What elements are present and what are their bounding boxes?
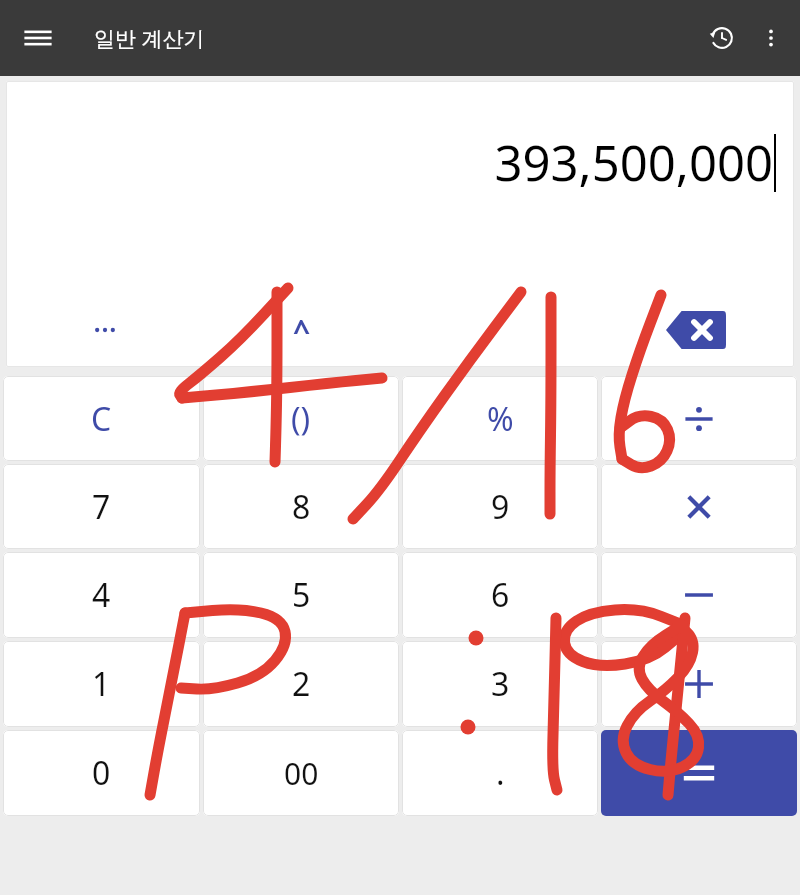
button[interactable]: Divide (601, 376, 797, 461)
staticText: 00 (284, 753, 319, 794)
staticText: ^ (293, 310, 311, 351)
staticText: 393,500,000 (494, 129, 773, 196)
button[interactable]: Minus (601, 552, 797, 638)
staticText: 5 (292, 573, 311, 617)
button[interactable]: 2 (203, 641, 399, 727)
button[interactable]: Backspace (597, 293, 794, 367)
staticText: 2 (292, 662, 311, 706)
button[interactable]: Equals (601, 730, 797, 816)
button[interactable]: 5 (203, 552, 399, 638)
staticText: 0 (92, 751, 111, 795)
button[interactable]: 1 (3, 641, 200, 727)
button[interactable]: History (696, 12, 748, 64)
button[interactable]: 3 (402, 641, 598, 727)
staticText: . (496, 751, 505, 795)
button[interactable]: More functions (6, 293, 203, 367)
button[interactable]: 6 (402, 552, 598, 638)
staticText: 3 (491, 662, 510, 706)
staticText: 6 (491, 573, 510, 617)
button[interactable]: 4 (3, 552, 200, 638)
button[interactable]: More options (748, 15, 794, 61)
button[interactable]: () (203, 376, 399, 461)
button[interactable]: Plus (601, 641, 797, 727)
button[interactable]: 00 (203, 730, 399, 816)
staticText: C (91, 397, 112, 441)
staticText: 4 (92, 573, 111, 617)
staticText: 9 (491, 485, 510, 529)
button[interactable]: Menu (10, 10, 66, 66)
staticText: 7 (92, 485, 111, 529)
button[interactable]: 9 (402, 464, 598, 549)
button[interactable]: % (402, 376, 598, 461)
button[interactable]: 0 (3, 730, 200, 816)
button[interactable]: C (3, 376, 200, 461)
staticText: 8 (292, 485, 311, 529)
button[interactable]: 8 (203, 464, 399, 549)
staticText: % (487, 397, 514, 441)
button[interactable]: . (402, 730, 598, 816)
button[interactable]: ^ (203, 293, 400, 367)
button[interactable]: Multiply (601, 464, 797, 549)
button[interactable]: 7 (3, 464, 200, 549)
staticText: () (291, 397, 311, 441)
staticText: 1 (92, 662, 111, 706)
staticText: 일반 계산기 (94, 24, 205, 53)
